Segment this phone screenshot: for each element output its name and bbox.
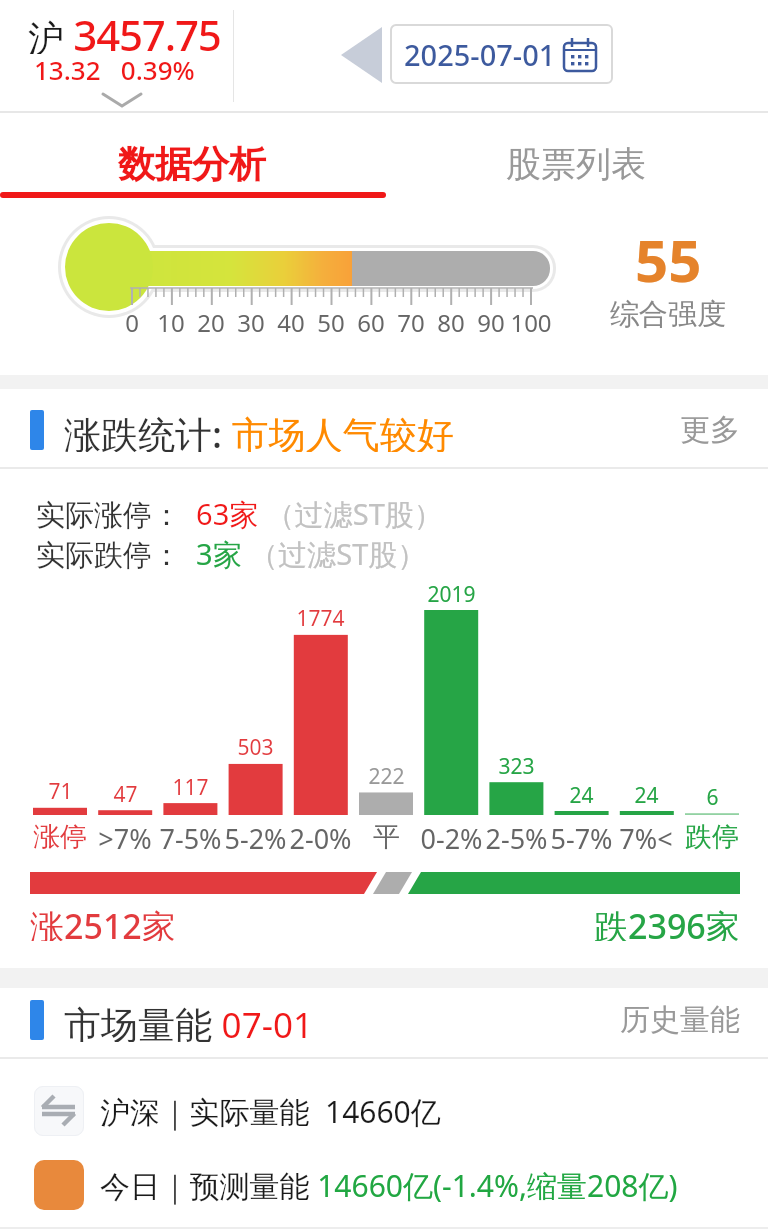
staticText: 综合强度 — [610, 296, 726, 332]
button[interactable]: 历史量能 — [600, 998, 740, 1042]
staticText: 24 — [569, 781, 594, 809]
staticText: 历史量能 — [620, 1001, 740, 1039]
staticText: 更多 — [680, 411, 740, 449]
staticText: 30 — [237, 306, 265, 334]
staticText: 1774 — [296, 604, 345, 632]
staticText: 20 — [197, 306, 225, 334]
button[interactable] — [34, 1086, 84, 1136]
staticText: 5-2% — [224, 820, 287, 852]
staticText: 24 — [634, 781, 659, 809]
staticText: 2019 — [427, 580, 476, 608]
staticText: 市场量能 07-01 — [64, 998, 313, 1042]
staticText: 今日｜预测量能 14660亿(-1.4%,缩量208亿) — [100, 1165, 678, 1206]
button[interactable]: 更多 — [600, 408, 740, 452]
staticText: 117 — [172, 773, 209, 801]
staticText: 实际跌停： 3家 （过滤ST股） — [36, 534, 427, 570]
staticText: 数据分析 — [118, 141, 266, 188]
staticText: 2025-07-01 — [404, 35, 556, 74]
staticText: 6 — [706, 783, 719, 811]
staticText: 323 — [498, 752, 535, 780]
staticText: 503 — [237, 733, 274, 761]
button[interactable]: 涨跌统计: 市场人气较好 — [64, 408, 624, 452]
staticText: 沪 3457.75 — [28, 6, 221, 54]
staticText: 60 — [357, 306, 385, 334]
staticText: 2-5% — [485, 820, 548, 852]
staticText: 涨跌统计: 市场人气较好 — [64, 408, 454, 452]
staticText: 5-7% — [550, 820, 613, 852]
staticText: 股票列表 — [506, 142, 646, 186]
button[interactable]: 股票列表 — [384, 127, 768, 201]
staticText: 40 — [277, 306, 305, 334]
staticText: 7%< — [619, 820, 673, 852]
button[interactable]: 沪深｜实际量能 14660亿 — [100, 1086, 740, 1136]
staticText: 100 — [510, 306, 552, 334]
staticText: 80 — [437, 306, 465, 334]
staticText: 10 — [157, 306, 185, 334]
staticText: 47 — [113, 780, 138, 808]
button[interactable]: 沪 3457.75 — [28, 6, 258, 54]
staticText: 跌停 — [685, 820, 739, 852]
staticText: 2-0% — [289, 820, 352, 852]
staticText: 71 — [48, 777, 73, 805]
staticText: 平 — [373, 820, 400, 852]
staticText: 0 — [125, 306, 139, 334]
button[interactable]: 市场量能 07-01 — [64, 998, 624, 1042]
button[interactable]: 今日｜预测量能 14660亿(-1.4%,缩量208亿) — [100, 1160, 760, 1210]
staticText: 涨停 — [33, 820, 87, 852]
staticText: >7% — [98, 820, 152, 852]
staticText: 沪深｜实际量能 14660亿 — [100, 1091, 441, 1132]
button[interactable]: 数据分析 — [0, 127, 384, 201]
staticText: 222 — [368, 762, 405, 790]
staticText: 实际涨停： 63家 （过滤ST股） — [36, 494, 443, 530]
staticText: 涨2512家 — [30, 903, 176, 941]
staticText: 90 — [477, 306, 505, 334]
staticText: 55 — [635, 220, 702, 284]
staticText: 0-2% — [420, 820, 483, 852]
button[interactable] — [341, 27, 382, 83]
staticText: 13.32 0.39% — [34, 52, 195, 86]
staticText: 50 — [317, 306, 345, 334]
staticText: 70 — [397, 306, 425, 334]
staticText: 跌2396家 — [594, 903, 740, 941]
staticText: 7-5% — [159, 820, 222, 852]
button[interactable]: 2025-07-01 — [390, 24, 613, 84]
button[interactable] — [34, 1160, 84, 1210]
